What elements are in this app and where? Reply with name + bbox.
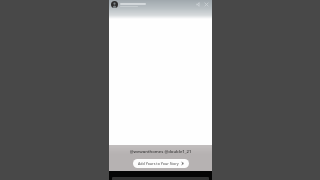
staticText: @wewanthomes @double1_21 [109,149,212,155]
staticText: Add Yours to Your Story [138,161,179,166]
button[interactable]: Add Yours to Your Story [133,159,189,168]
button[interactable]: Sound [195,1,202,8]
button[interactable]: More options [203,1,210,8]
button[interactable]: Profile photo [111,1,118,8]
